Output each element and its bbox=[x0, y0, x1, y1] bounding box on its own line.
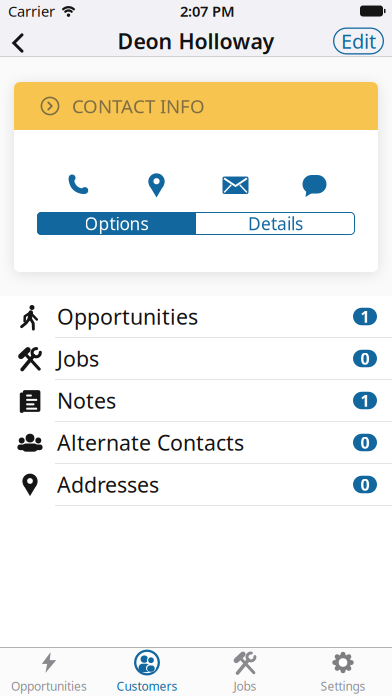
staticText: Opportunities bbox=[11, 678, 87, 694]
staticText: Options bbox=[84, 212, 148, 235]
staticText: Jobs bbox=[233, 678, 256, 694]
staticText: Edit bbox=[341, 28, 376, 54]
staticText: Deon Holloway bbox=[117, 27, 274, 55]
staticText: 2:07 PM bbox=[180, 1, 235, 21]
staticText: Settings bbox=[320, 678, 365, 694]
staticText: Details bbox=[248, 212, 303, 235]
button[interactable] bbox=[196, 170, 275, 200]
staticText: CONTACT INFO bbox=[72, 94, 205, 118]
button[interactable]: Jobs bbox=[0, 338, 392, 379]
staticText: Carrier bbox=[8, 1, 55, 21]
button[interactable]: Alternate Contacts bbox=[0, 422, 392, 463]
staticText: 0 bbox=[360, 474, 369, 495]
button[interactable] bbox=[117, 170, 196, 200]
staticText: 0 bbox=[360, 432, 369, 453]
button[interactable]: Opportunities bbox=[0, 296, 392, 337]
button[interactable]: Addresses bbox=[0, 464, 392, 505]
button[interactable]: Options bbox=[37, 212, 196, 235]
staticText: Alternate Contacts bbox=[57, 428, 244, 457]
button[interactable] bbox=[275, 170, 354, 200]
button[interactable]: Opportunities bbox=[0, 648, 98, 696]
staticText: 1 bbox=[360, 306, 369, 327]
staticText: Opportunities bbox=[57, 302, 198, 331]
button[interactable]: Settings bbox=[294, 648, 392, 696]
button[interactable]: Notes bbox=[0, 380, 392, 421]
staticText: Addresses bbox=[57, 470, 159, 499]
button[interactable] bbox=[0, 22, 24, 56]
staticText: Notes bbox=[57, 386, 116, 415]
button[interactable] bbox=[38, 170, 117, 200]
button[interactable]: Customers bbox=[98, 648, 196, 696]
button[interactable]: CONTACT INFO bbox=[14, 82, 378, 130]
staticText: 0 bbox=[360, 348, 369, 369]
button[interactable]: Details bbox=[196, 212, 355, 235]
staticText: Jobs bbox=[57, 344, 99, 373]
button[interactable]: Edit bbox=[333, 23, 384, 54]
staticText: Customers bbox=[116, 678, 177, 694]
button[interactable]: Jobs bbox=[196, 648, 294, 696]
staticText: 1 bbox=[360, 390, 369, 411]
